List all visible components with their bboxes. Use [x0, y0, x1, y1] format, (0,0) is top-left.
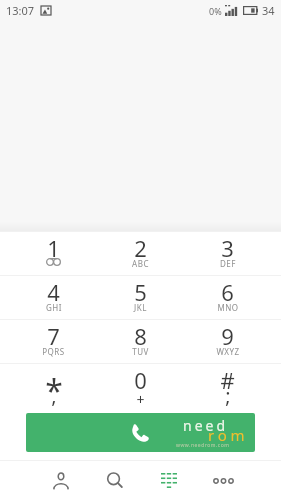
staticText: need	[183, 416, 229, 435]
staticText: 7	[47, 321, 60, 351]
staticText: 3	[221, 233, 234, 263]
button[interactable]: *	[10, 364, 97, 406]
staticText: 4	[47, 277, 60, 307]
staticText: rom	[208, 425, 249, 445]
staticText: 0	[134, 365, 147, 395]
staticText: 34	[262, 3, 275, 18]
staticText: 13:07	[6, 3, 35, 18]
staticText: 8	[134, 321, 147, 351]
staticText: 2	[134, 233, 147, 263]
staticText: *	[45, 369, 63, 411]
staticText: +	[136, 390, 145, 409]
staticText: PQRS	[42, 346, 65, 357]
staticText: 1	[47, 233, 60, 263]
staticText: 0%	[209, 5, 222, 17]
staticText: 9	[221, 321, 234, 351]
button[interactable]: Call	[26, 413, 255, 452]
staticText: TUV	[132, 346, 149, 357]
staticText: MNO	[217, 302, 239, 313]
button[interactable]: Dialpad	[142, 461, 196, 500]
staticText: www.needrom.com	[176, 442, 230, 449]
staticText: JKL	[134, 302, 147, 313]
button[interactable]: 9	[184, 320, 271, 363]
staticText: ;	[225, 382, 231, 409]
staticText: 6	[221, 277, 234, 307]
button[interactable]: 4	[10, 276, 97, 319]
button[interactable]: 7	[10, 320, 97, 363]
button[interactable]: 1	[10, 232, 97, 275]
staticText: WXYZ	[216, 346, 240, 357]
staticText: DEF	[220, 258, 236, 269]
staticText: ,	[51, 382, 57, 409]
staticText: ABC	[132, 258, 149, 269]
button[interactable]: 8	[97, 320, 184, 363]
button[interactable]: 0	[97, 364, 184, 406]
button[interactable]: 6	[184, 276, 271, 319]
button[interactable]: Contacts	[34, 461, 88, 500]
staticText: GHI	[46, 302, 62, 313]
staticText: #	[220, 365, 235, 395]
button[interactable]: 5	[97, 276, 184, 319]
button[interactable]: More	[196, 461, 250, 500]
button[interactable]: #	[184, 364, 271, 406]
button[interactable]: 2	[97, 232, 184, 275]
staticText: 5	[134, 277, 147, 307]
button[interactable]: 3	[184, 232, 271, 275]
button[interactable]: Search	[88, 461, 142, 500]
